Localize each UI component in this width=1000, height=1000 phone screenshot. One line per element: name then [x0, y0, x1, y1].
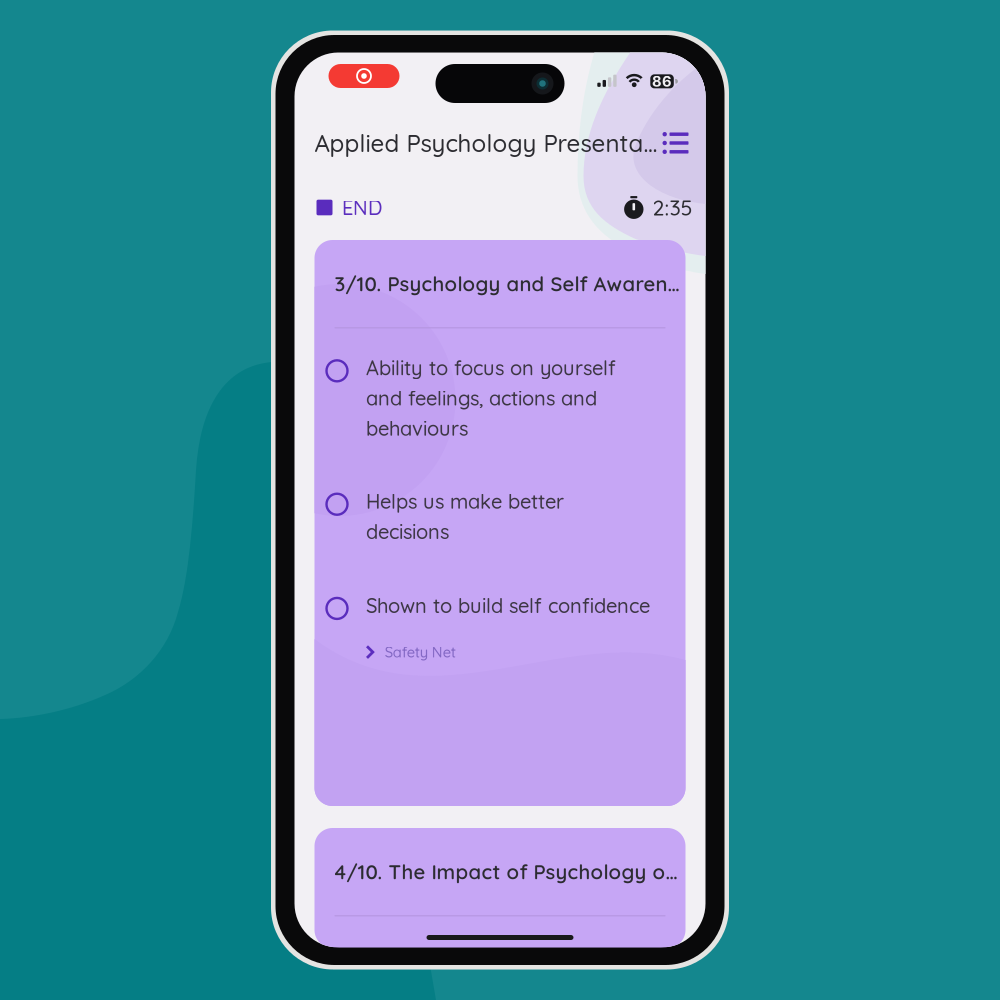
button[interactable]: END	[316, 195, 382, 220]
staticText: Safety Net	[385, 643, 456, 661]
staticText: Helps us make better decisions	[366, 489, 564, 544]
staticText: Ability to focus on yourself and feeling…	[366, 355, 616, 441]
button[interactable]: Stop recording	[328, 64, 399, 88]
staticText: END	[342, 195, 382, 220]
staticText: 86	[652, 72, 672, 90]
staticText: Applied Psychology Presenta…	[314, 128, 657, 158]
staticText: 3/10. Psychology and Self Awaren…	[334, 271, 679, 296]
button[interactable]: Slide list	[662, 132, 688, 153]
staticText: Shown to build self confidence	[366, 593, 650, 618]
staticText: 4/10. The Impact of Psychology o…	[334, 859, 677, 884]
staticText: 2:35	[652, 194, 692, 221]
button[interactable]: Safety Net	[314, 619, 456, 661]
